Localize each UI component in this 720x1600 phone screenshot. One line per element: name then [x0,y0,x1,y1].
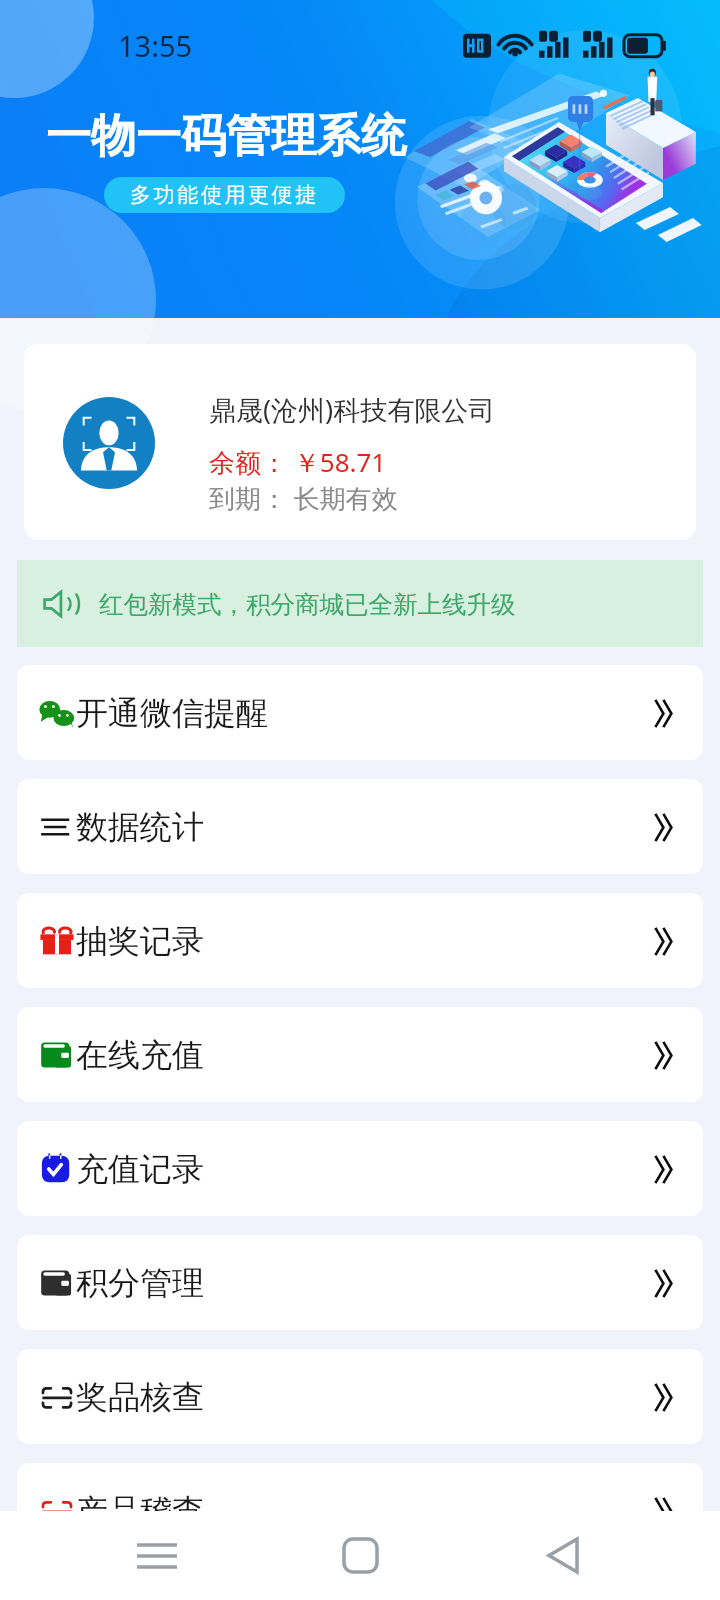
staticText: 余额： ￥58.71 [209,444,387,480]
button[interactable]: 在线充值 [17,1007,703,1102]
button[interactable]: 红包新模式，积分商城已全新上线升级 [17,560,703,647]
staticText: 奖品核查 [76,1377,204,1417]
button[interactable]: 开通微信提醒 [17,665,703,760]
staticText: 产品稽查 [76,1491,204,1531]
button[interactable]: 多功能使用更便捷 [130,182,319,208]
staticText: 抽奖记录 [76,921,204,961]
button[interactable]: 鼎晟(沧州)科技有限公司 [24,344,696,540]
button[interactable]: Home [314,1511,406,1600]
button[interactable]: Back [517,1511,609,1600]
button[interactable]: Recent apps [111,1511,203,1600]
staticText: 13:55 [118,26,193,65]
staticText: 到期： 长期有效 [209,480,398,516]
staticText: 在线充值 [76,1035,204,1075]
button[interactable]: 数据统计 [17,779,703,874]
button[interactable]: 奖品核查 [17,1349,703,1444]
button[interactable]: 充值记录 [17,1121,703,1216]
staticText: 开通微信提醒 [76,693,268,733]
staticText: 一物一码管理系统 [46,108,406,165]
button[interactable]: 产品稽查 [17,1463,703,1558]
staticText: 多功能使用更便捷 [130,182,319,208]
staticText: 红包新模式，积分商城已全新上线升级 [99,589,516,620]
staticText: 鼎晟(沧州)科技有限公司 [209,391,496,428]
button[interactable]: 积分管理 [17,1235,703,1330]
staticText: 数据统计 [76,807,204,847]
staticText: 充值记录 [76,1149,204,1189]
staticText: 积分管理 [76,1263,204,1303]
button[interactable]: 抽奖记录 [17,893,703,988]
